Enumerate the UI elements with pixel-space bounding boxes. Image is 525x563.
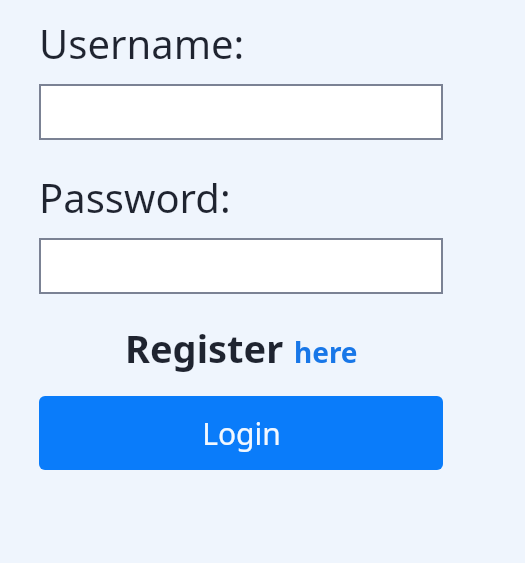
button[interactable]: Username input field: [39, 84, 443, 140]
staticText: Username:: [39, 16, 245, 70]
button[interactable]: Password input field: [39, 238, 443, 294]
button[interactable]: Login: [39, 396, 443, 470]
staticText: Login: [202, 413, 281, 454]
button[interactable]: Register: [125, 322, 284, 374]
button[interactable]: here: [294, 333, 358, 371]
staticText: here: [294, 333, 358, 371]
staticText: Password:: [39, 170, 231, 224]
